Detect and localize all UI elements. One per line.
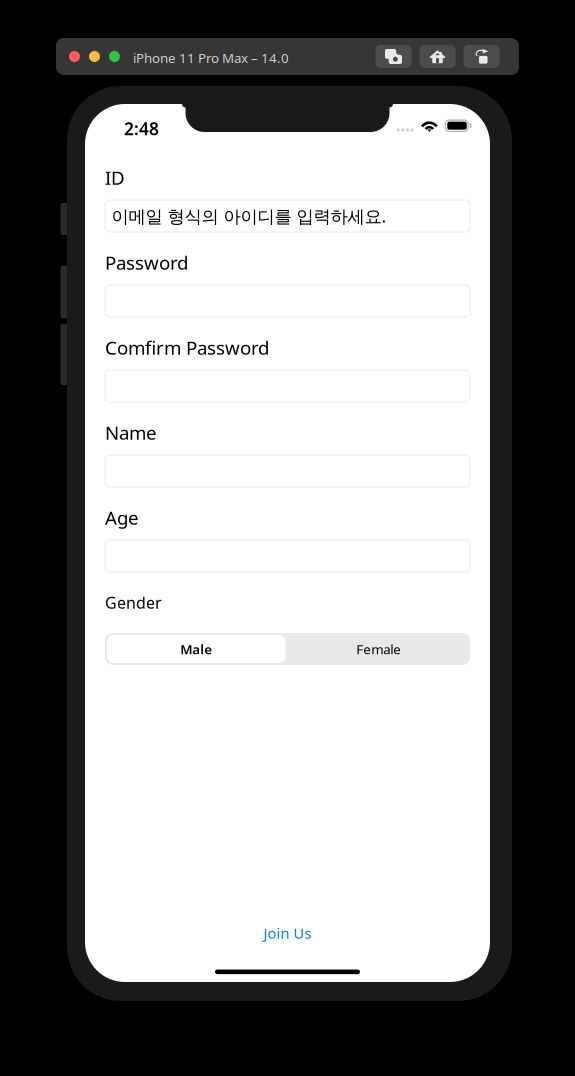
staticText: 이메일 형식의 아이디를 입력하세요. — [111, 204, 386, 227]
button[interactable]: Male — [107, 635, 285, 663]
staticText: Name — [105, 420, 157, 445]
staticText: Male — [180, 640, 212, 658]
staticText: Password — [105, 250, 188, 275]
staticText: Age — [105, 505, 139, 530]
staticText: Female — [356, 640, 401, 658]
staticText: ID — [105, 165, 125, 190]
staticText: 2:48 — [124, 117, 159, 140]
button[interactable]: Join Us — [85, 918, 490, 948]
button[interactable]: Home — [419, 45, 455, 68]
staticText: Join Us — [263, 923, 311, 943]
staticText: Gender — [105, 592, 162, 613]
staticText: iPhone 11 Pro Max – 14.0 — [133, 49, 289, 67]
button[interactable]: Screenshot — [375, 45, 411, 68]
button[interactable]: Share — [463, 45, 499, 68]
button[interactable]: Female — [289, 635, 468, 663]
staticText: Comfirm Password — [105, 335, 269, 360]
